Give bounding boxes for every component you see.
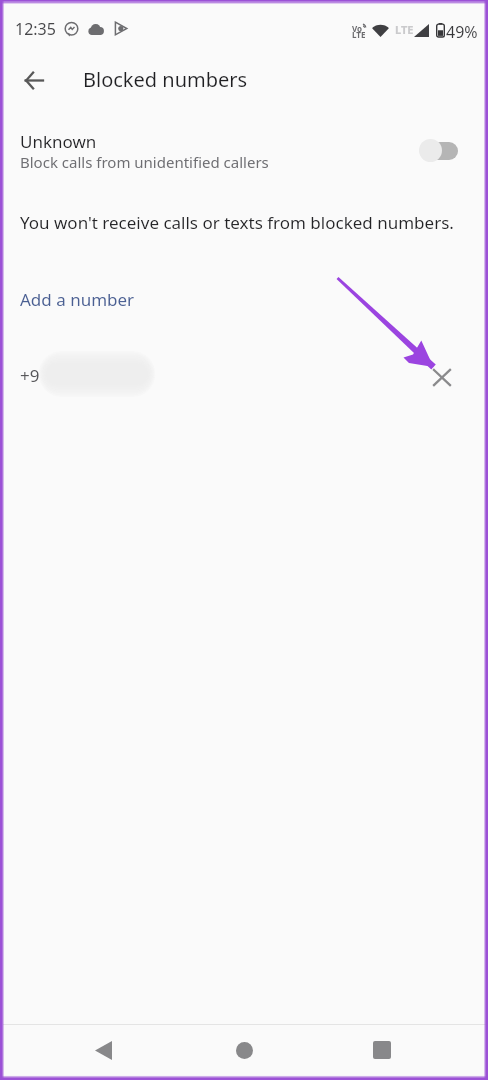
staticText: 49% [446,21,478,43]
staticText: Vo [352,23,363,34]
staticText: +9 [20,364,40,387]
staticText: You won't receive calls or texts from bl… [20,211,454,234]
staticText: Unknown [20,130,97,153]
button[interactable]: Unknown [3,117,486,185]
button[interactable]: +9 [3,350,486,398]
button[interactable]: Home [220,1026,268,1074]
button[interactable]: Back [10,56,58,104]
staticText: Add a number [20,288,135,311]
staticText: Blocked numbers [83,66,248,93]
button[interactable]: Remove blocked number [421,357,462,398]
button[interactable]: Back [79,1026,127,1074]
staticText: LTE [395,22,414,37]
staticText: Block calls from unidentified callers [20,152,269,172]
button[interactable]: Recent apps [358,1026,406,1074]
staticText: LTE [352,29,366,40]
button[interactable]: Add a number [3,273,486,325]
staticText: 12:35 [15,18,56,40]
